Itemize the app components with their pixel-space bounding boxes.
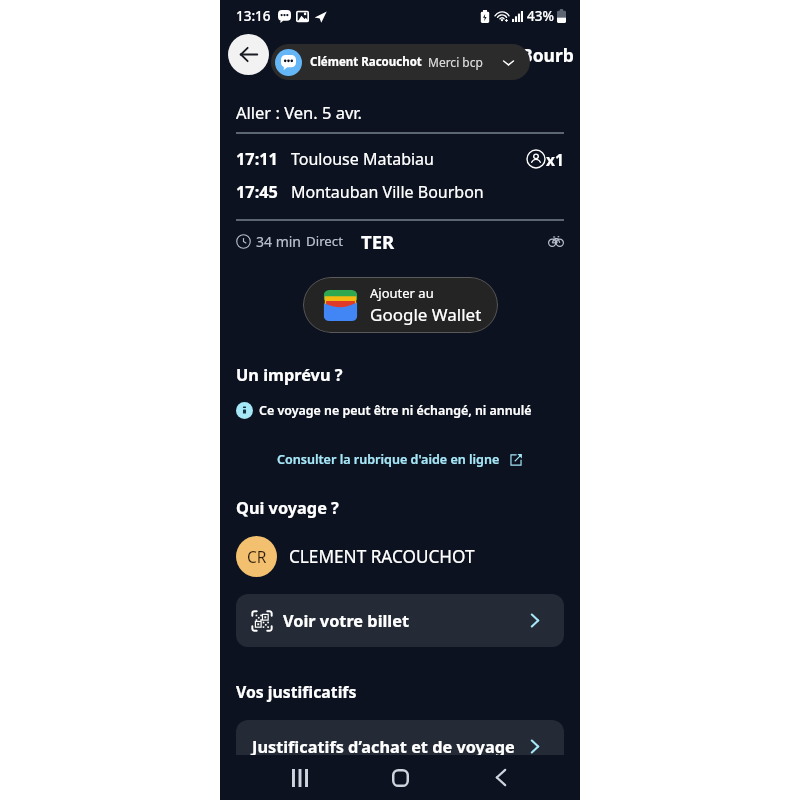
staticText: Voir votre billet <box>283 610 410 632</box>
staticText: Consulter la rubrique d'aide en ligne <box>277 451 500 468</box>
button[interactable]: Recent apps <box>268 755 332 800</box>
button[interactable]: Back <box>469 755 533 800</box>
staticText: Montauban Ville Bourbon <box>291 181 484 203</box>
staticText: Ajouter au <box>370 284 434 302</box>
button[interactable]: Home <box>368 755 432 800</box>
staticText: Merci bcp <box>428 54 483 70</box>
staticText: Google Wallet <box>370 303 482 326</box>
staticText: 34 min <box>256 232 302 251</box>
staticText: CLEMENT RACOUCHOT <box>289 545 475 568</box>
staticText: Ce voyage ne peut être ni échangé, ni an… <box>259 402 532 419</box>
staticText: 13:16 <box>236 7 271 25</box>
staticText: Un imprévu ? <box>236 364 343 386</box>
staticText: Bourb <box>521 43 574 67</box>
button[interactable]: Justificatifs d’achat et de voyage <box>236 720 564 773</box>
staticText: Clément Racouchot <box>310 54 422 70</box>
staticText: Vos justificatifs <box>236 681 357 703</box>
staticText: Aller : Ven. 5 avr. <box>236 101 362 119</box>
staticText: Justificatifs d’achat et de voyage <box>252 736 515 758</box>
staticText: Qui voyage ? <box>236 497 339 519</box>
button[interactable]: Back <box>228 34 269 75</box>
button[interactable]: Consulter la rubrique d'aide en ligne <box>277 451 523 468</box>
staticText: Direct <box>306 232 344 250</box>
button[interactable]: Ajouter au <box>303 277 498 333</box>
staticText: CR <box>247 546 267 567</box>
button[interactable]: Voir votre billet <box>236 594 564 647</box>
staticText: Toulouse Matabiau <box>291 148 434 170</box>
button[interactable]: Clément Racouchot <box>271 44 530 80</box>
staticText: TER <box>361 229 395 253</box>
staticText: 17:11 <box>236 148 278 170</box>
staticText: 43% <box>527 7 554 25</box>
staticText: x1 <box>546 149 564 170</box>
staticText: 17:45 <box>236 181 278 203</box>
